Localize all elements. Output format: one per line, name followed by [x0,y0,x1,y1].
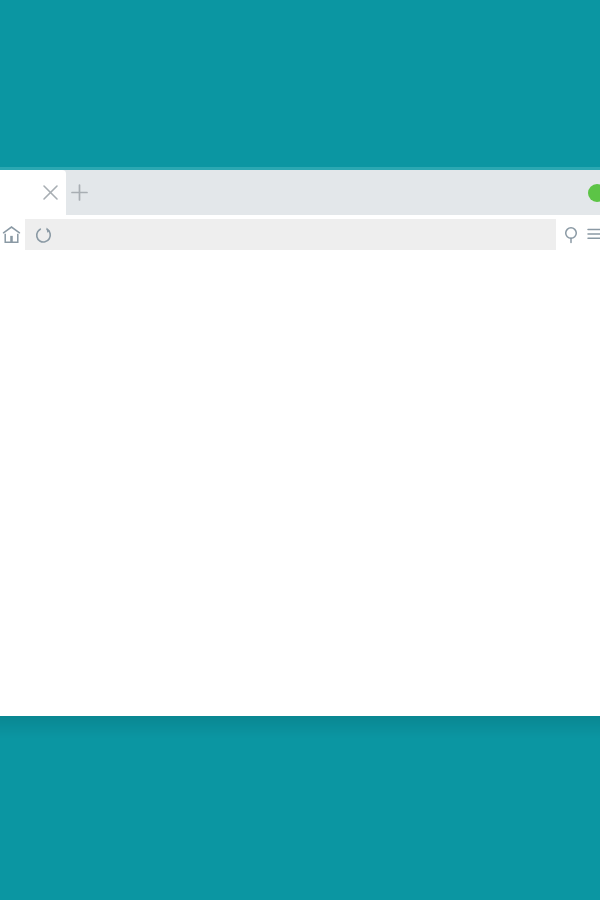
button[interactable]: Close tab [38,170,62,215]
button[interactable]: Reload [30,219,56,250]
button[interactable]: Sync status [588,183,600,203]
button[interactable]: New tab [66,170,92,215]
button[interactable]: Current tab [0,170,66,215]
button[interactable]: Address bar [25,219,556,250]
button[interactable]: Menu [588,219,600,250]
button[interactable]: Home [0,219,22,250]
button[interactable]: Search [558,219,584,250]
